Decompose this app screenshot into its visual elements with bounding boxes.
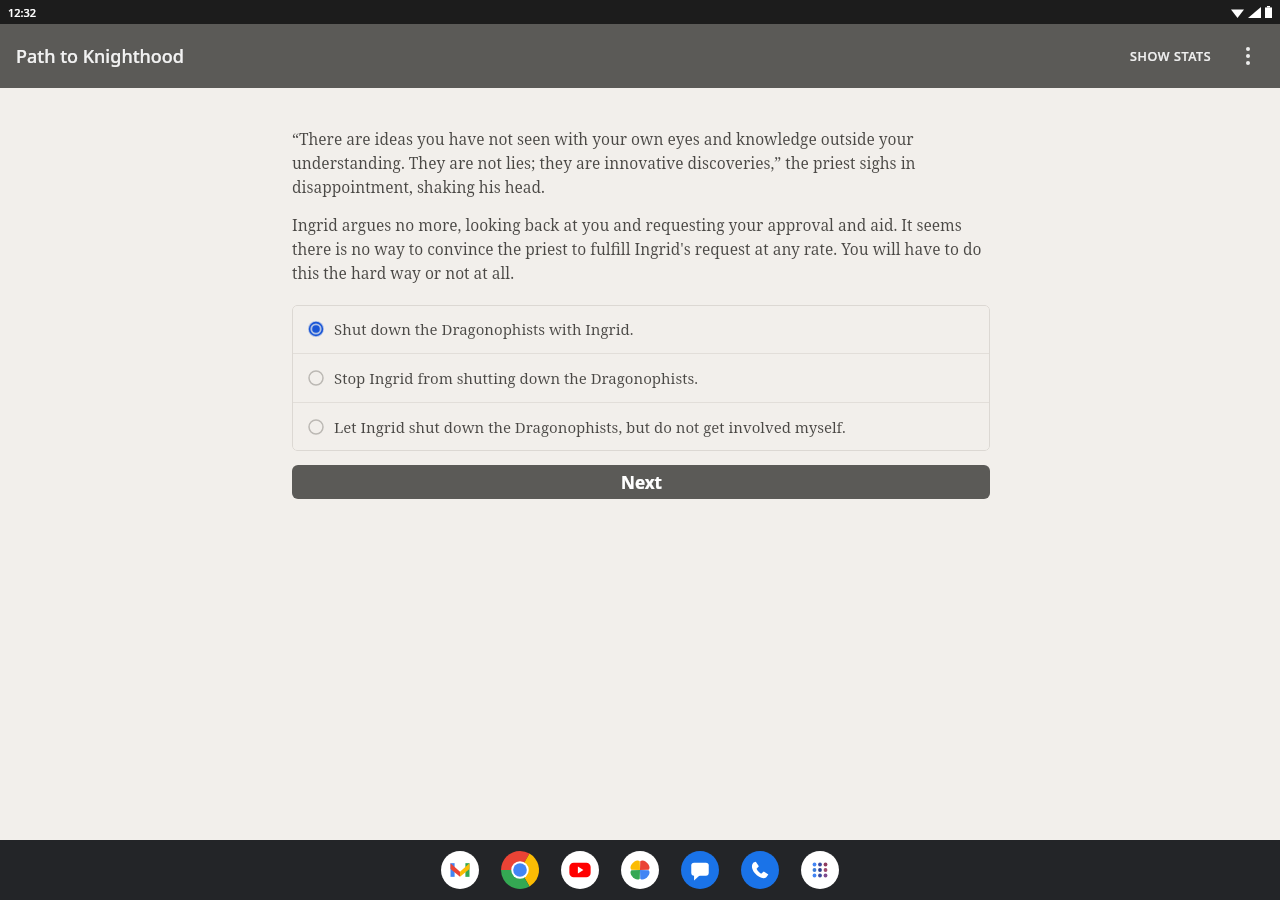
button[interactable]: Messages <box>680 850 720 890</box>
staticText: “There are ideas you have not seen with … <box>292 128 990 197</box>
button[interactable]: Next <box>292 465 990 499</box>
staticText: Stop Ingrid from shutting down the Drago… <box>334 368 698 388</box>
button[interactable]: Shut down the Dragonophists with Ingrid. <box>292 305 990 353</box>
button[interactable]: Stop Ingrid from shutting down the Drago… <box>292 354 990 402</box>
staticText: Path to Knighthood <box>16 44 185 69</box>
staticText: Next <box>621 471 662 494</box>
button[interactable]: More options <box>1224 32 1272 80</box>
staticText: Ingrid argues no more, looking back at y… <box>292 214 990 283</box>
staticText: Shut down the Dragonophists with Ingrid. <box>334 319 634 339</box>
button[interactable]: YouTube <box>560 850 600 890</box>
button[interactable]: Phone <box>740 850 780 890</box>
button[interactable]: Chrome <box>500 850 540 890</box>
staticText: SHOW STATS <box>1130 48 1212 65</box>
staticText: Let Ingrid shut down the Dragonophists, … <box>334 417 846 437</box>
button[interactable]: Photos <box>620 850 660 890</box>
button[interactable]: All apps <box>800 850 840 890</box>
button[interactable]: Gmail <box>440 850 480 890</box>
button[interactable]: SHOW STATS <box>1118 36 1224 77</box>
staticText: 12:32 <box>8 5 37 20</box>
button[interactable]: Let Ingrid shut down the Dragonophists, … <box>292 403 990 451</box>
